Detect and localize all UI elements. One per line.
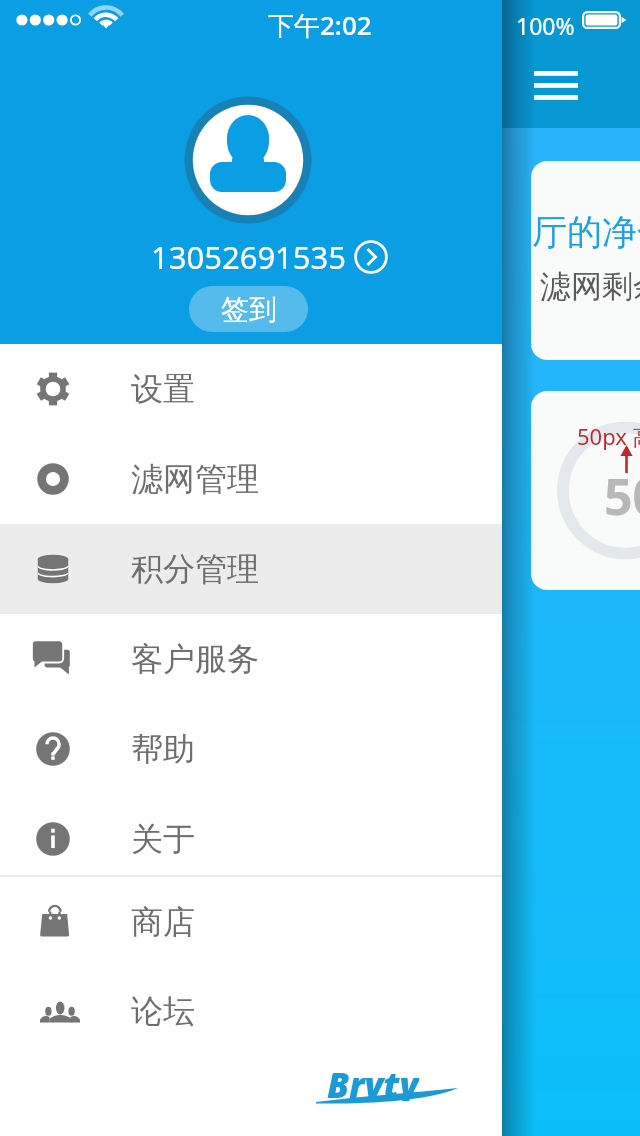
button[interactable]: 滤网管理 [0, 434, 502, 524]
staticText: 客厅的净化器 [531, 210, 640, 254]
staticText: 100% [516, 10, 575, 41]
button[interactable]: 签到 [189, 286, 308, 332]
staticText: 论坛 [131, 991, 195, 1031]
button[interactable]: 50 [531, 391, 640, 590]
button[interactable]: 商店 [0, 877, 502, 966]
button[interactable]: Profile avatar [184, 96, 312, 224]
staticText: 13052691535 [151, 236, 347, 278]
button[interactable]: 关于 [0, 794, 502, 884]
staticText: 帮助 [131, 729, 195, 769]
button[interactable]: 客户服务 [0, 614, 502, 704]
staticText: 积分管理 [131, 549, 259, 589]
button[interactable]: 客厅的净化器 [531, 161, 640, 360]
button[interactable]: 论坛 [0, 966, 502, 1055]
staticText: 50 [604, 462, 640, 530]
button[interactable]: 帮助 [0, 704, 502, 794]
staticText: Bryty [327, 1061, 419, 1101]
staticText: 关于 [131, 819, 195, 859]
staticText: 滤网管理 [131, 459, 259, 499]
staticText: 签到 [221, 292, 277, 327]
staticText: 客户服务 [131, 639, 259, 679]
staticText: 滤网剩余 80% [540, 264, 640, 306]
staticText: 下午2:02 [268, 7, 372, 43]
button[interactable]: 设置 [0, 344, 502, 434]
button[interactable]: Open navigation menu [520, 49, 592, 121]
button[interactable]: 积分管理 [0, 524, 502, 614]
staticText: 设置 [131, 369, 195, 409]
staticText: 商店 [131, 902, 195, 942]
staticText: 50px 高度 [577, 421, 640, 451]
